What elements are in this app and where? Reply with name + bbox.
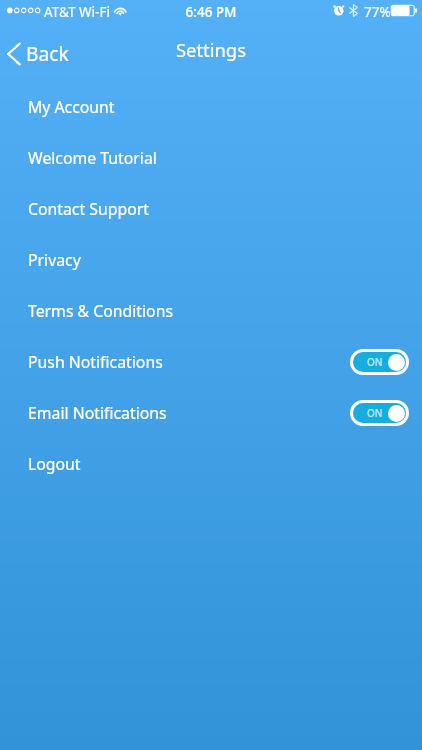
button[interactable]: Logout [0,438,422,489]
staticText: 6:46 PM [0,3,422,21]
staticText: My Account [28,96,115,118]
staticText: Welcome Tutorial [28,147,157,169]
button[interactable]: Terms & Conditions [0,285,422,336]
staticText: Privacy [28,249,81,271]
staticText: ON [367,355,383,369]
staticText: Push Notifications [28,351,163,373]
button[interactable]: Welcome Tutorial [0,132,422,183]
staticText: 77% [364,3,391,21]
staticText: Contact Support [28,198,149,220]
staticText: AT&T Wi-Fi [44,3,110,21]
button[interactable]: Email Notifications [0,387,422,438]
button[interactable]: Contact Support [0,183,422,234]
button[interactable]: Back [0,37,81,71]
staticText: ON [367,406,383,420]
button[interactable]: My Account [0,81,422,132]
button[interactable]: Toggle on [350,400,409,426]
button[interactable]: Privacy [0,234,422,285]
staticText: Settings [176,37,246,62]
staticText: Terms & Conditions [28,300,173,322]
staticText: Email Notifications [28,402,167,424]
staticText: Back [26,40,69,66]
staticText: Logout [28,453,81,475]
button[interactable]: Toggle on [350,349,409,375]
button[interactable]: Push Notifications [0,336,422,387]
